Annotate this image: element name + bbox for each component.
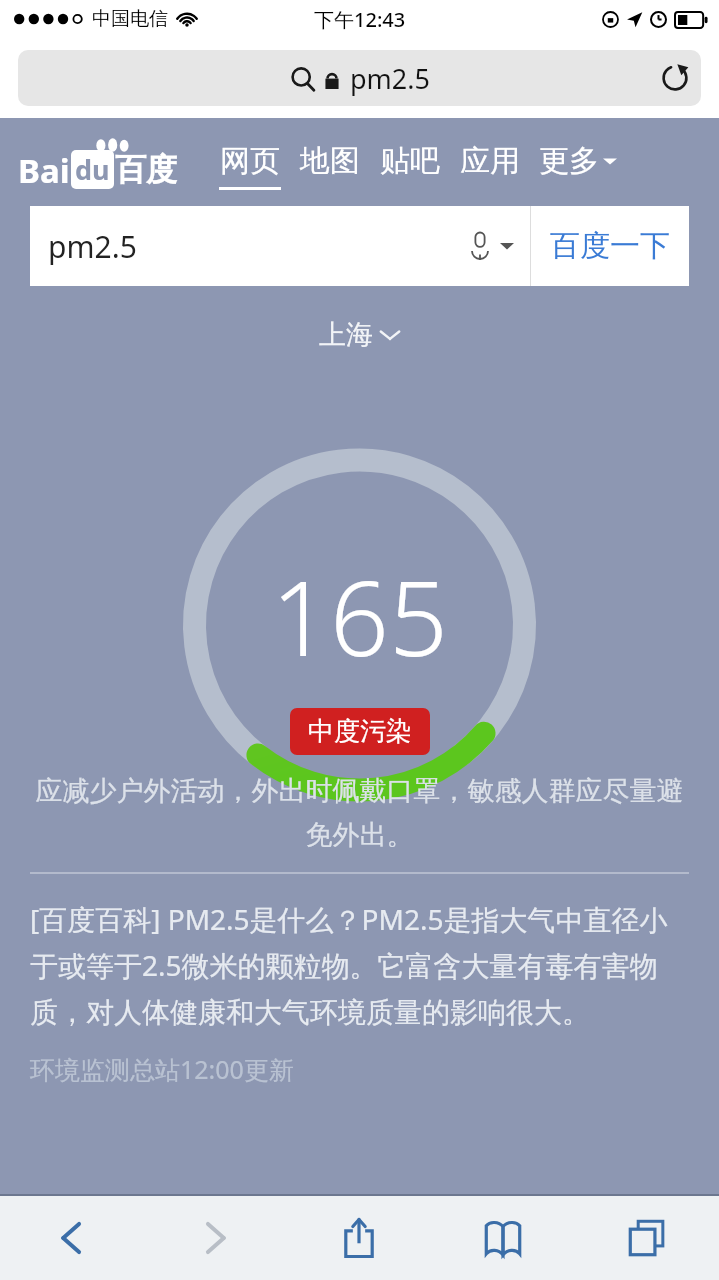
button[interactable]: pm2.5 bbox=[18, 50, 701, 106]
staticText: 环境监测总站12:00更新 bbox=[30, 1052, 689, 1086]
button[interactable]: 贴吧 bbox=[379, 142, 441, 190]
button[interactable]: Back bbox=[0, 1196, 143, 1280]
staticText: 下午12:43 bbox=[314, 6, 406, 33]
staticText: 应用 bbox=[460, 142, 520, 180]
staticText: 中度污染 bbox=[308, 715, 412, 748]
staticText: 地图 bbox=[300, 142, 360, 180]
button[interactable]: 百度一下 bbox=[531, 206, 689, 286]
button[interactable]: pm2.5 bbox=[30, 206, 530, 286]
button[interactable]: Tabs bbox=[575, 1196, 719, 1280]
button[interactable]: 应用 bbox=[459, 142, 521, 190]
staticText: 百度 bbox=[115, 150, 177, 189]
button[interactable]: 上海 bbox=[0, 318, 719, 352]
staticText: 上海 bbox=[319, 318, 373, 352]
staticText: pm2.5 bbox=[350, 60, 430, 97]
button[interactable]: 中度污染 bbox=[290, 708, 430, 755]
button[interactable]: Bai bbox=[18, 136, 194, 190]
button[interactable]: 更多 bbox=[539, 142, 617, 190]
staticText: Bai bbox=[18, 148, 70, 190]
staticText: 贴吧 bbox=[380, 142, 440, 180]
button[interactable]: Bookmarks bbox=[431, 1196, 575, 1280]
button[interactable]: 地图 bbox=[299, 142, 361, 190]
button[interactable]: [百度百科] PM2.5是什么？PM2.5是指大气中直径小于或等于2.5微米的颗… bbox=[30, 900, 689, 1030]
button[interactable]: Reload bbox=[653, 56, 697, 100]
staticText: 中国电信 bbox=[92, 7, 168, 31]
staticText: 百度一下 bbox=[550, 227, 670, 265]
staticText: 网页 bbox=[220, 142, 280, 180]
staticText: 更多 bbox=[539, 142, 599, 180]
staticText: pm2.5 bbox=[48, 226, 137, 267]
staticText: 165 bbox=[271, 546, 448, 686]
button[interactable]: Forward bbox=[143, 1196, 287, 1280]
staticText: du bbox=[75, 151, 110, 188]
button[interactable]: Share bbox=[287, 1196, 431, 1280]
button[interactable]: 网页 bbox=[219, 142, 281, 190]
staticText: 应减少户外活动，外出时佩戴口罩，敏感人群应尽量避免外出。 bbox=[32, 774, 687, 852]
